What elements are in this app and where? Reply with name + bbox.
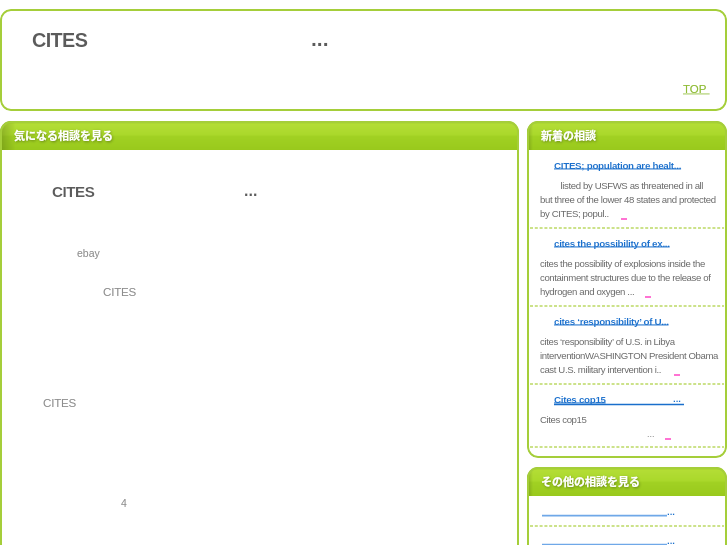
staticText: ... [667, 535, 675, 545]
staticText: 新着の相談 [541, 127, 596, 143]
staticText: ... [673, 393, 681, 404]
staticText: CITES [32, 29, 88, 51]
staticText: listed by USFWS as threatened in all [540, 180, 704, 191]
staticText: cast U.S. military intervention i.. [540, 364, 662, 375]
staticText: cites ‘responsibility’ of U.S. in Libya [540, 336, 675, 347]
button[interactable]: cites ‘responsibility’ of U... [527, 306, 727, 368]
staticText: ebay [77, 247, 100, 259]
staticText: その他の相談を見る [541, 473, 640, 489]
staticText: cites the possibility of ex... [554, 238, 670, 249]
staticText: ... [647, 429, 655, 439]
staticText: Cites cop15 [540, 414, 587, 425]
staticText: interventionWASHINGTON President Obama [540, 350, 719, 361]
button[interactable]: Open consultation [527, 496, 727, 525]
staticText: containment structures due to the releas… [540, 272, 711, 283]
staticText: by CITES; popul.. [540, 208, 609, 219]
staticText: ... [244, 182, 258, 200]
staticText: Cites cop15 [554, 394, 606, 405]
button[interactable]: CITES; population are healt... [527, 150, 727, 212]
staticText: CITES [103, 285, 137, 298]
button[interactable]: cites the possibility of ex... [527, 228, 727, 290]
staticText: 4 [121, 497, 127, 509]
staticText: TOP [683, 83, 710, 96]
button[interactable]: Cites cop15 [527, 384, 727, 446]
staticText: ... [667, 506, 675, 517]
button[interactable]: 気になる相談を見る [0, 121, 519, 150]
staticText: CITES [43, 396, 77, 409]
staticText: hydrogen and oxygen ... [540, 286, 635, 297]
staticText: 気になる相談を見る [14, 127, 113, 143]
staticText: cites ‘responsibility’ of U... [554, 316, 669, 327]
button[interactable]: その他の相談を見る [527, 467, 727, 496]
staticText: ... [311, 27, 329, 50]
staticText: CITES [52, 183, 95, 200]
staticText: but three of the lower 48 states and pro… [540, 194, 716, 205]
button[interactable]: Open consultation [527, 525, 727, 545]
staticText: CITES; population are healt... [554, 160, 682, 171]
staticText: cites the possibility of explosions insi… [540, 258, 705, 269]
button[interactable]: 新着の相談 [527, 121, 727, 150]
button[interactable]: TOP [683, 83, 710, 96]
